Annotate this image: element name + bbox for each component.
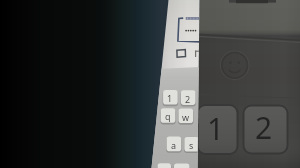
staticText: 2 <box>185 93 191 105</box>
staticText: w <box>182 111 190 123</box>
staticText: 1 <box>207 108 225 149</box>
button[interactable]: Phone login screen photo <box>0 0 300 168</box>
staticText: 1 <box>167 92 173 104</box>
staticText: q <box>165 110 171 122</box>
staticText: s <box>189 139 194 151</box>
staticText: 2 <box>255 107 273 148</box>
staticText: a <box>171 139 177 151</box>
